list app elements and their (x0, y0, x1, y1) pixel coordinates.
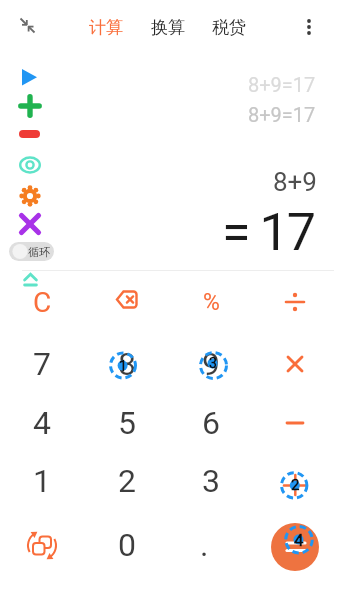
staticText: C (33, 286, 52, 319)
staticText: % (203, 289, 220, 316)
button[interactable]: . (174, 517, 234, 573)
staticText: 2 (118, 462, 136, 500)
button[interactable]: 2 (97, 453, 157, 509)
staticText: 8+9=17 (248, 73, 316, 96)
button[interactable] (19, 155, 41, 175)
button[interactable]: 循环 (9, 242, 54, 261)
button[interactable]: 1 (12, 453, 72, 509)
button[interactable]: 0 (97, 517, 157, 573)
button[interactable] (14, 12, 38, 36)
button[interactable]: 换算 (145, 12, 191, 42)
button[interactable] (19, 212, 41, 236)
staticText: 2 (291, 476, 300, 494)
staticText: 计算 (89, 17, 123, 38)
button[interactable]: 3 (181, 453, 241, 509)
staticText: 税贷 (212, 17, 246, 38)
button[interactable] (12, 517, 72, 573)
staticText: 4 (33, 404, 51, 442)
button[interactable] (265, 395, 325, 451)
staticText: 7 (33, 345, 51, 383)
staticText: 3 (209, 355, 217, 371)
button[interactable] (97, 274, 157, 330)
button[interactable] (19, 184, 41, 208)
staticText: 8+9 (273, 167, 317, 197)
button[interactable] (265, 453, 325, 509)
button[interactable] (19, 127, 41, 141)
button[interactable]: 税贷 (206, 12, 252, 42)
staticText: 6 (202, 404, 220, 442)
button[interactable]: 8 (97, 336, 157, 392)
staticText: 5 (118, 404, 136, 442)
button[interactable]: % (181, 274, 241, 330)
staticText: 循环 (28, 245, 50, 259)
staticText: 3 (202, 462, 220, 500)
button[interactable]: 6 (181, 395, 241, 451)
staticText: 4 (294, 530, 304, 550)
staticText: 1 (119, 358, 127, 374)
button[interactable]: 9 (181, 336, 241, 392)
staticText: 9 (202, 345, 220, 383)
button[interactable] (296, 12, 324, 42)
button[interactable]: 5 (97, 395, 157, 451)
button[interactable] (271, 523, 319, 571)
staticText: 8+9=17 (248, 103, 316, 126)
button[interactable] (20, 67, 39, 87)
button[interactable] (265, 336, 325, 392)
button[interactable] (265, 274, 325, 330)
staticText: 0 (118, 526, 136, 564)
button[interactable]: 7 (12, 336, 72, 392)
button[interactable] (23, 272, 38, 288)
button[interactable] (19, 95, 41, 117)
button[interactable]: 4 (12, 395, 72, 451)
staticText: . (200, 526, 209, 564)
button[interactable]: 计算 (83, 12, 129, 42)
staticText: 8 (118, 345, 136, 383)
button[interactable]: C (12, 274, 72, 330)
staticText: = 17 (222, 202, 314, 263)
staticText: 换算 (151, 17, 185, 38)
staticText: 1 (33, 462, 51, 500)
